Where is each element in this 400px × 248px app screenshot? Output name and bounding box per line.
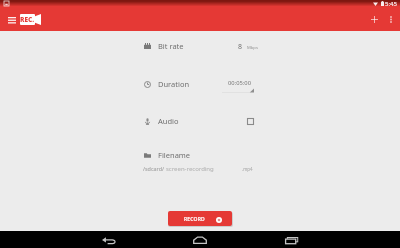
staticText: .mp4 <box>242 166 253 172</box>
button[interactable]: Filename <box>144 149 257 161</box>
staticText: 8 <box>238 42 243 52</box>
staticText: REC. <box>20 15 35 24</box>
staticText: Duration <box>158 79 190 89</box>
staticText: Mbps <box>247 45 258 51</box>
staticText: 5:45 <box>385 0 397 7</box>
button[interactable]: RECORD <box>168 211 232 226</box>
button[interactable]: Audio <box>144 115 257 127</box>
staticText: Audio <box>158 116 179 126</box>
button[interactable]: Back <box>99 233 119 247</box>
staticText: screen-recording <box>166 165 214 173</box>
staticText: /sdcard/ <box>143 165 164 172</box>
button[interactable]: Add <box>366 11 382 27</box>
button[interactable]: More options <box>383 11 399 27</box>
staticText: Bit rate <box>158 41 184 51</box>
staticText: 00:05:00 <box>228 79 252 87</box>
button[interactable]: Recents <box>281 233 301 247</box>
staticText: Filename <box>158 150 191 160</box>
button[interactable]: Bit rate <box>144 40 257 52</box>
button[interactable]: Duration <box>144 78 257 90</box>
button[interactable]: Home <box>190 233 210 247</box>
button[interactable]: Menu <box>4 12 19 27</box>
staticText: RECORD <box>184 216 205 223</box>
